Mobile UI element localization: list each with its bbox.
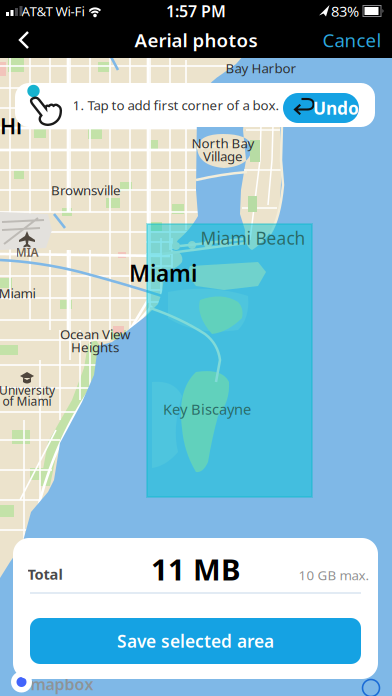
staticText: 10 GB max. xyxy=(298,566,369,584)
staticText: Brownsville xyxy=(51,181,121,199)
staticText: of Miami xyxy=(2,393,51,409)
staticText: Save selected area xyxy=(117,629,274,652)
staticText: University xyxy=(0,382,55,398)
staticText: Miami xyxy=(0,284,35,302)
button[interactable]: Undo xyxy=(283,93,359,123)
staticText: Miami Beach xyxy=(200,226,305,249)
staticText: MIA xyxy=(15,244,38,260)
staticText: mapbox xyxy=(30,673,93,695)
staticText: 1. Tap to add first corner of a box. xyxy=(72,96,279,114)
staticText: Miami xyxy=(129,258,197,288)
button[interactable]: Cancel xyxy=(317,24,387,56)
staticText: Hi xyxy=(0,112,22,140)
staticText: Village xyxy=(203,147,243,165)
button[interactable]: Save selected area xyxy=(30,618,361,664)
staticText: Bay Harbor xyxy=(225,59,296,77)
staticText: 11 MB xyxy=(151,549,241,588)
staticText: Key Biscayne xyxy=(163,399,251,419)
staticText: 1:57 PM xyxy=(166,0,226,22)
staticText: Heights xyxy=(71,338,119,356)
staticText: Aerial photos xyxy=(134,28,257,52)
staticText: Undo xyxy=(313,96,359,119)
staticText: North Bay xyxy=(191,134,254,152)
staticText: Cancel xyxy=(322,28,381,52)
staticText: AT&T Wi-Fi xyxy=(21,2,84,20)
staticText: Total xyxy=(27,564,62,584)
staticText: 83% xyxy=(331,1,359,21)
button[interactable] xyxy=(6,24,42,56)
staticText: Ocean View xyxy=(60,325,130,343)
